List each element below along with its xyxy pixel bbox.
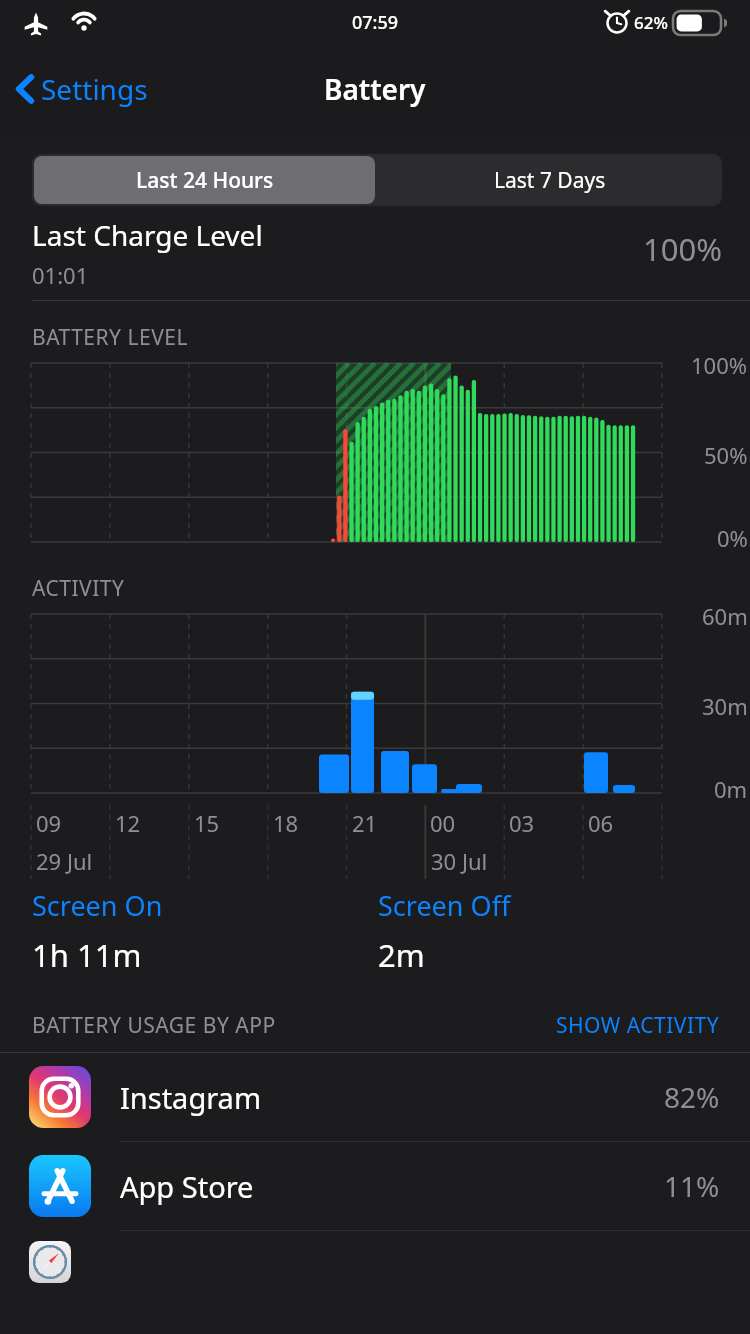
staticText: App Store	[120, 1167, 254, 1206]
staticText: 62%	[634, 11, 668, 34]
staticText: 07:59	[352, 10, 399, 35]
staticText: BATTERY USAGE BY APP	[32, 1011, 276, 1040]
staticText: 06	[588, 808, 614, 838]
staticText: Screen On	[32, 887, 163, 924]
button[interactable]: Last 7 Days	[377, 154, 722, 206]
staticText: 21	[352, 808, 378, 838]
staticText: 11%	[664, 1167, 720, 1205]
staticText: 50%	[704, 440, 748, 470]
staticText: Instagram	[120, 1078, 261, 1117]
button[interactable]: Screen Off	[378, 887, 511, 976]
staticText: 100%	[643, 228, 722, 270]
staticText: 29 Jul	[36, 846, 93, 876]
staticText: 01:01	[32, 260, 89, 290]
staticText: ACTIVITY	[32, 574, 125, 603]
staticText: BATTERY LEVEL	[32, 323, 188, 352]
button[interactable]: App Store	[0, 1142, 750, 1230]
staticText: Last 7 Days	[494, 166, 606, 195]
staticText: Battery	[324, 70, 426, 108]
staticText: 09	[36, 808, 62, 838]
staticText: 0%	[717, 523, 748, 553]
staticText: 15	[194, 808, 220, 838]
button[interactable]: Settings	[8, 62, 156, 116]
button[interactable]: Instagram	[0, 1053, 750, 1141]
button[interactable]	[0, 1231, 750, 1273]
staticText: 30m	[702, 691, 748, 721]
staticText: Settings	[41, 70, 148, 108]
staticText: 60m	[702, 601, 748, 631]
staticText: 0m	[714, 774, 748, 804]
staticText: 82%	[664, 1078, 720, 1116]
staticText: 12	[115, 808, 141, 838]
staticText: 03	[509, 808, 535, 838]
staticText: 1h 11m	[32, 934, 142, 976]
staticText: Screen Off	[378, 887, 511, 924]
staticText: 100%	[691, 350, 748, 380]
staticText: 30 Jul	[431, 846, 488, 876]
staticText: Last 24 Hours	[136, 166, 274, 195]
button[interactable]: Screen On	[32, 887, 378, 976]
staticText: 2m	[378, 934, 425, 976]
button[interactable]: Last 24 Hours	[34, 156, 375, 204]
staticText: 00	[430, 808, 456, 838]
staticText: Last Charge Level	[32, 216, 263, 254]
staticText: SHOW ACTIVITY	[556, 1011, 720, 1040]
staticText: 18	[273, 808, 299, 838]
button[interactable]: SHOW ACTIVITY	[556, 1011, 720, 1040]
